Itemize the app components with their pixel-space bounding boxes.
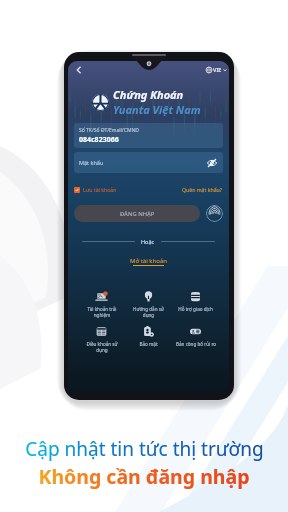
staticText: Lưu tài khoản (83, 186, 117, 193)
staticText: Chứng Khoán (113, 87, 184, 102)
staticText: Hoặc (141, 238, 155, 245)
button[interactable]: Bảo mật (125, 323, 172, 349)
button[interactable]: Hỗ trợ giao dịch (172, 288, 219, 314)
button[interactable]: Quên mật khẩu? (182, 186, 223, 193)
button[interactable]: Show password (205, 156, 218, 169)
staticText: VIE (213, 66, 222, 73)
staticText: ĐĂNG NHẬP (120, 210, 155, 218)
staticText: Tài khoản trải nghiệm (87, 306, 117, 318)
staticText: Mật khẩu (79, 159, 104, 166)
button[interactable]: Mở tài khoản (130, 257, 167, 266)
button[interactable]: Back (72, 63, 86, 77)
staticText: Không cần đăng nhập (38, 463, 250, 490)
button[interactable]: Fingerprint login (206, 205, 223, 222)
button[interactable]: ĐĂNG NHẬP (74, 205, 200, 222)
button[interactable]: Hướng dẫn sử dụng (125, 288, 172, 320)
staticText: Yuanta Việt Nam (113, 102, 201, 117)
button[interactable]: Tài khoản trải nghiệm (78, 288, 125, 320)
button[interactable]: Số TK/Số ĐT/Email/CMND (74, 123, 223, 148)
button[interactable]: Mật khẩu (74, 152, 223, 173)
staticText: Số TK/Số ĐT/Email/CMND (79, 127, 139, 134)
staticText: Bảo mật (139, 341, 158, 347)
staticText: Điều khoản sử dụng (86, 341, 118, 353)
staticText: Mở tài khoản (130, 257, 167, 265)
staticText: 084c823066 (79, 135, 119, 145)
button[interactable]: Lưu tài khoản (74, 186, 117, 193)
staticText: Hướng dẫn sử dụng (133, 306, 164, 318)
staticText: Hỗ trợ giao dịch (178, 306, 213, 312)
button[interactable]: Điều khoản sử dụng (78, 323, 125, 355)
staticText: Bản công bố rủi ro (176, 341, 216, 347)
button[interactable]: Bản công bố rủi ro (172, 323, 219, 349)
staticText: Cập nhật tin tức thị trường (25, 436, 264, 462)
button[interactable]: VIE (206, 66, 227, 73)
